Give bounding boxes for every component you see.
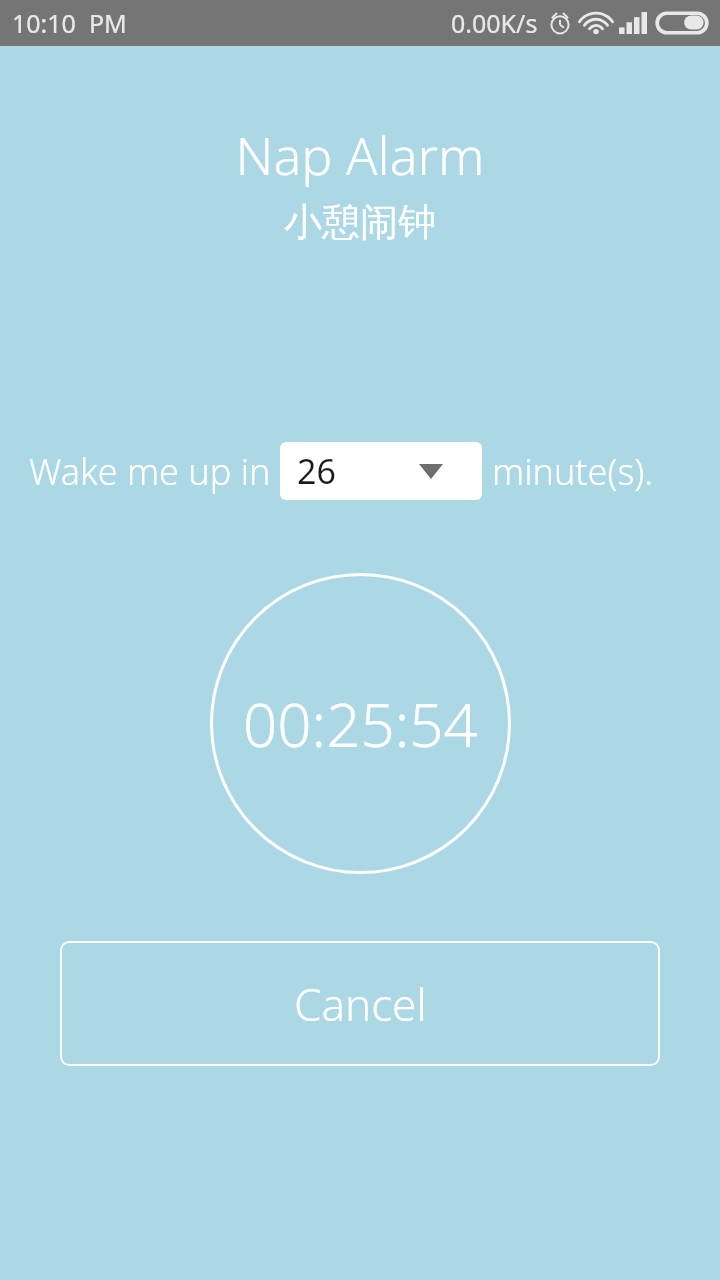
button[interactable]: Select minutes xyxy=(280,442,482,500)
staticText: 10:10 PM xyxy=(12,6,127,40)
button[interactable]: Cancel xyxy=(60,941,660,1066)
staticText: minute(s). xyxy=(492,447,654,496)
staticText: Wake me up in xyxy=(29,447,271,496)
staticText: Cancel xyxy=(294,974,427,1034)
staticText: 00:25:54 xyxy=(243,683,478,765)
staticText: 0.00K/s xyxy=(451,6,538,40)
staticText: Nap Alarm xyxy=(0,119,720,190)
staticText: 26 xyxy=(297,448,336,494)
staticText: 小憩闹钟 xyxy=(0,198,720,246)
